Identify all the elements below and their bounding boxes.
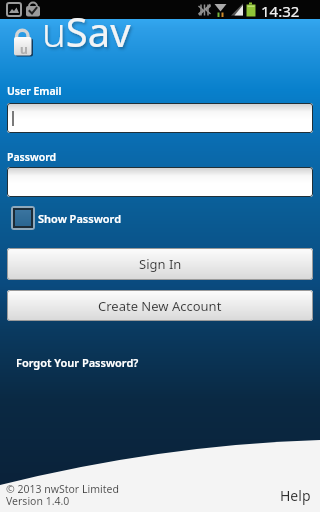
staticText: Show Password xyxy=(38,211,122,226)
staticText: u xyxy=(20,41,28,57)
button[interactable]: Show Password xyxy=(11,206,126,230)
staticText: Password xyxy=(7,150,57,164)
button[interactable] xyxy=(7,103,313,133)
staticText: Create New Account xyxy=(98,297,222,315)
staticText: uSav xyxy=(42,4,131,58)
button[interactable]: Forgot Your Password? xyxy=(16,355,139,370)
button[interactable]: Sign In xyxy=(7,248,313,280)
staticText: Help xyxy=(280,486,311,505)
staticText: Forgot Your Password? xyxy=(16,355,139,370)
staticText: © 2013 nwStor Limited xyxy=(6,482,119,496)
button[interactable]: Help xyxy=(280,486,311,505)
staticText: Sign In xyxy=(139,255,182,273)
button[interactable]: Create New Account xyxy=(7,290,313,321)
staticText: 14:32 xyxy=(261,1,300,21)
staticText: User Email xyxy=(7,84,62,98)
staticText: Version 1.4.0 xyxy=(6,494,70,508)
button[interactable] xyxy=(7,167,313,197)
